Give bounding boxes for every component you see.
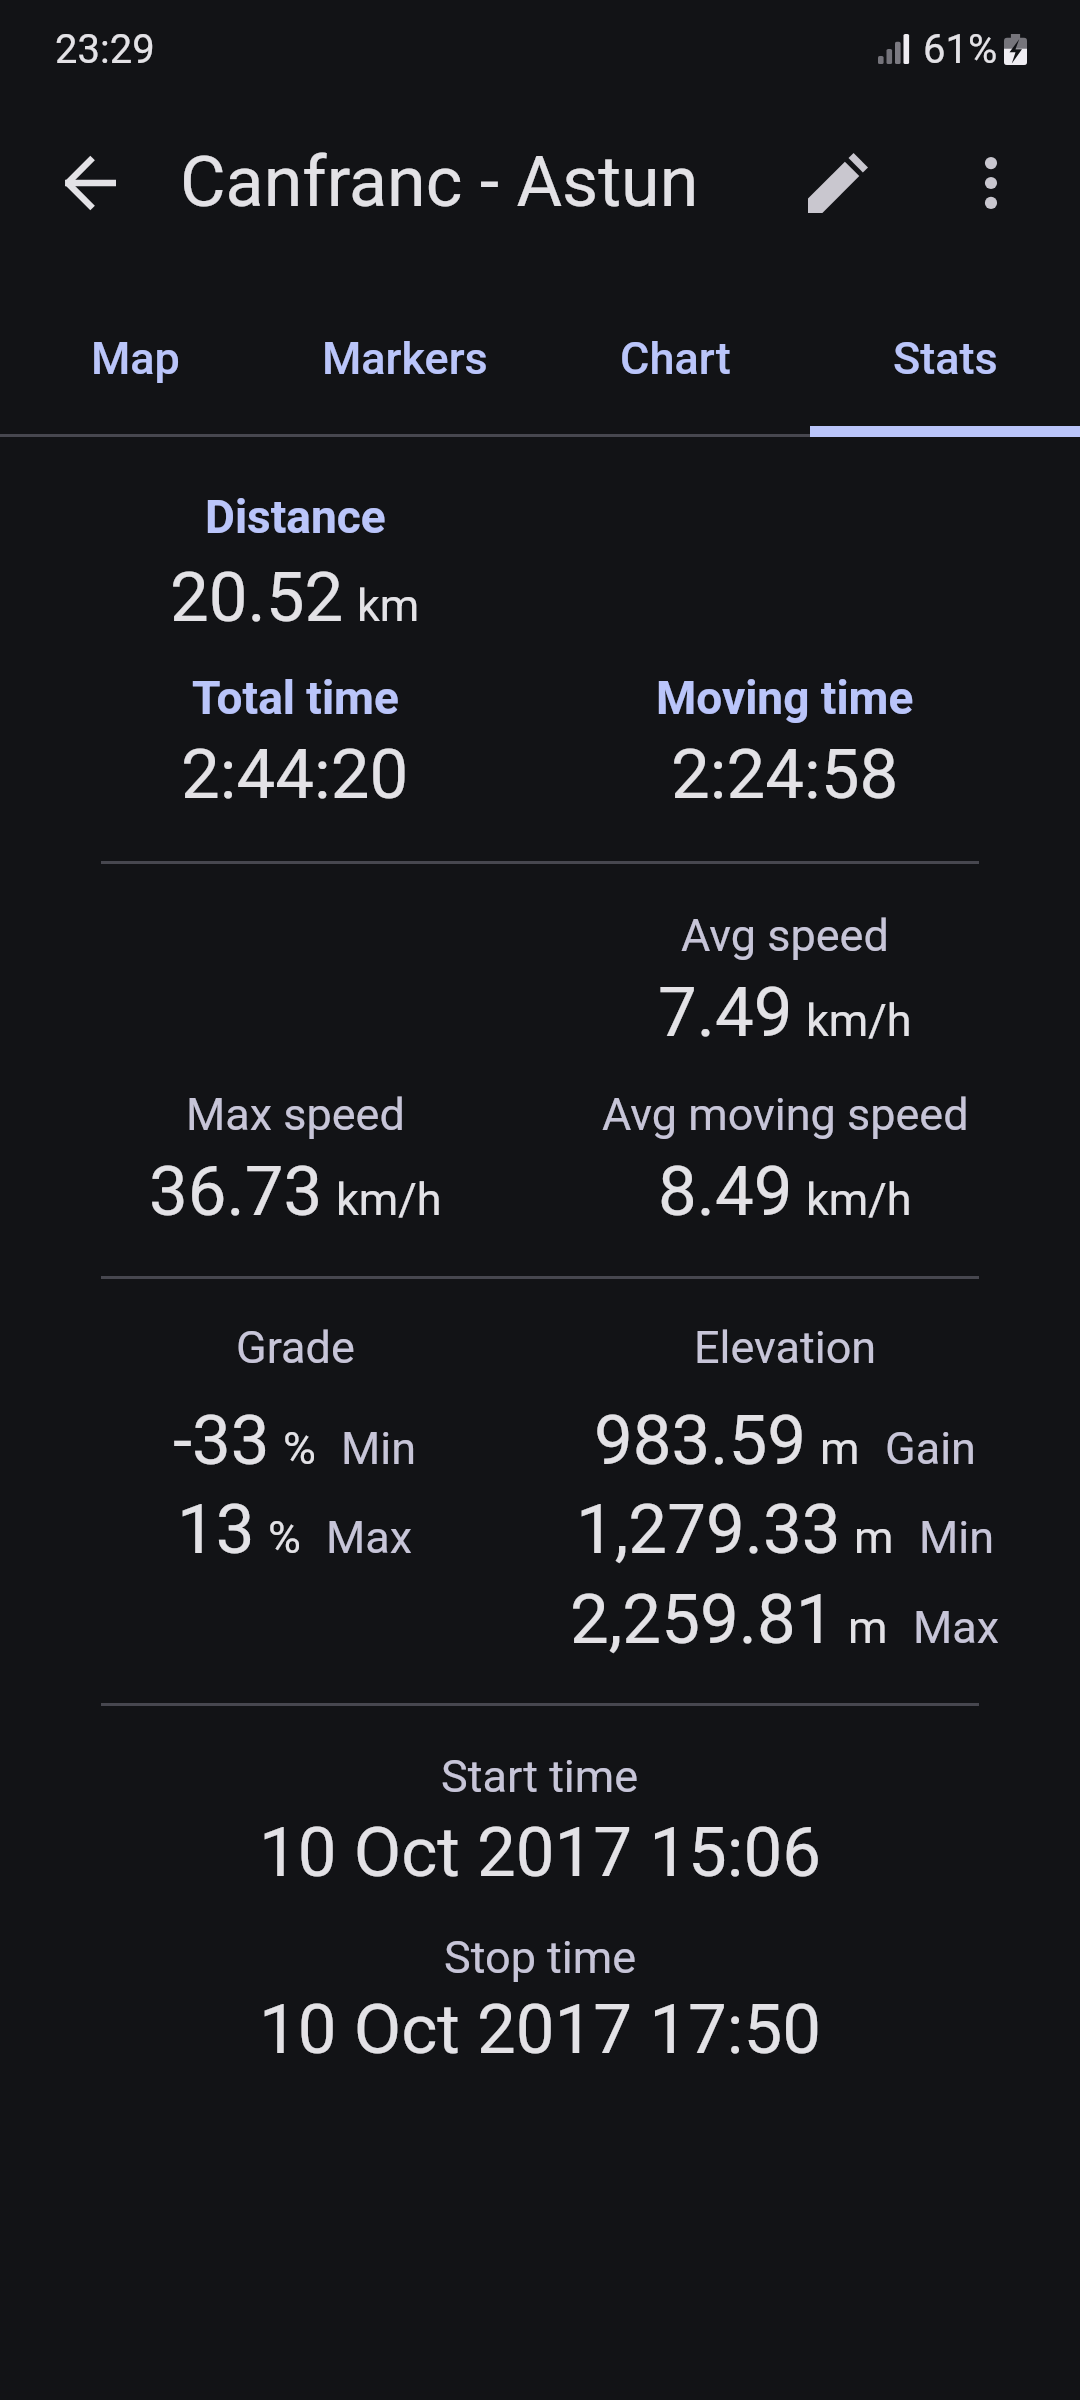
staticText: Avg speed — [681, 909, 889, 962]
staticText: Start time — [441, 1750, 639, 1803]
staticText: Elevation — [694, 1321, 877, 1374]
staticText: Distance — [205, 490, 386, 544]
staticText: 23:29 — [55, 26, 155, 73]
staticText: Markers — [322, 332, 488, 385]
button[interactable]: Map — [0, 262, 270, 437]
staticText: 2:24:58 — [671, 734, 899, 815]
staticText: Chart — [620, 332, 731, 385]
staticText: Stop time — [444, 1931, 637, 1984]
staticText: 36.73 — [149, 1151, 323, 1232]
staticText: 7.49 — [658, 972, 793, 1053]
staticText: Min — [919, 1511, 995, 1564]
staticText: 1,279.33 — [576, 1489, 841, 1570]
staticText: m — [854, 1511, 894, 1564]
staticText: km/h — [806, 1173, 912, 1226]
staticText: 8.49 — [658, 1151, 793, 1232]
staticText: m — [820, 1422, 860, 1475]
staticText: 10 Oct 2017 17:50 — [259, 1989, 822, 2070]
staticText: Grade — [236, 1321, 355, 1374]
staticText: m — [848, 1601, 888, 1654]
staticText: km/h — [806, 994, 912, 1047]
staticText: Moving time — [656, 671, 914, 725]
staticText: Canfranc - Astun — [180, 141, 699, 223]
staticText: Total time — [192, 671, 399, 725]
staticText: Max — [913, 1601, 1000, 1654]
staticText: Max speed — [186, 1088, 405, 1141]
button[interactable]: Back — [38, 135, 142, 231]
staticText: 20.52 — [170, 557, 344, 638]
button[interactable]: Markers — [270, 262, 540, 437]
staticText: % — [268, 1511, 301, 1564]
staticText: 983.59 — [594, 1400, 807, 1481]
button[interactable]: Edit — [780, 131, 896, 235]
staticText: Gain — [885, 1422, 976, 1475]
staticText: 2,259.81 — [570, 1579, 835, 1660]
button[interactable]: Chart — [540, 262, 810, 437]
staticText: km — [357, 579, 420, 632]
staticText: km/h — [336, 1173, 442, 1226]
staticText: % — [283, 1422, 316, 1475]
staticText: Map — [91, 332, 180, 385]
staticText: -33 — [173, 1400, 270, 1481]
staticText: Stats — [893, 332, 998, 385]
staticText: Min — [341, 1422, 417, 1475]
staticText: 2:44:20 — [181, 734, 409, 815]
staticText: Max — [326, 1511, 413, 1564]
button[interactable]: More options — [936, 131, 1046, 235]
staticText: 61% — [923, 26, 998, 73]
button[interactable]: Stats — [810, 262, 1080, 437]
staticText: Avg moving speed — [602, 1088, 969, 1141]
staticText: 13 — [177, 1489, 255, 1570]
staticText: 10 Oct 2017 15:06 — [259, 1812, 822, 1893]
